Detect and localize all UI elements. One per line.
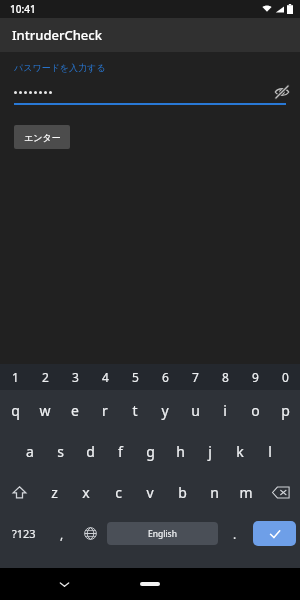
button[interactable]: 5 xyxy=(120,364,150,390)
staticText: z xyxy=(51,483,58,502)
button[interactable]: 2 xyxy=(30,364,60,390)
staticText: n xyxy=(210,483,219,502)
staticText: , xyxy=(60,526,64,542)
button[interactable]: エンター xyxy=(14,125,70,149)
staticText: e xyxy=(71,401,79,420)
button[interactable]: l xyxy=(255,431,285,472)
staticText: v xyxy=(146,483,154,502)
staticText: d xyxy=(86,442,95,461)
staticText: l xyxy=(268,442,272,461)
button[interactable]: Hide password xyxy=(0,81,300,103)
button[interactable]: d xyxy=(75,431,105,472)
staticText: 9 xyxy=(252,369,259,385)
button[interactable]: 9 xyxy=(240,364,270,390)
button[interactable]: w xyxy=(30,390,60,431)
button[interactable]: Home xyxy=(140,582,160,586)
staticText: b xyxy=(178,483,187,502)
button[interactable]: s xyxy=(45,431,75,472)
staticText: 8 xyxy=(222,369,229,385)
staticText: 7 xyxy=(192,369,199,385)
staticText: t xyxy=(132,401,138,420)
staticText: 1 xyxy=(12,369,19,385)
staticText: m xyxy=(239,483,253,502)
staticText: w xyxy=(39,401,51,420)
staticText: j xyxy=(208,442,212,461)
button[interactable]: , xyxy=(47,513,76,554)
button[interactable]: 4 xyxy=(90,364,120,390)
staticText: i xyxy=(223,401,227,420)
staticText: p xyxy=(281,401,290,420)
staticText: パスワードを入力する xyxy=(14,62,106,73)
staticText: エンター xyxy=(24,132,61,143)
staticText: x xyxy=(82,483,90,502)
staticText: c xyxy=(115,483,122,502)
button[interactable]: u xyxy=(180,390,210,431)
button[interactable]: t xyxy=(120,390,150,431)
button[interactable]: i xyxy=(210,390,240,431)
button[interactable]: 0 xyxy=(270,364,300,390)
button[interactable]: Backspace xyxy=(262,472,300,513)
button[interactable]: r xyxy=(90,390,120,431)
button[interactable]: f xyxy=(105,431,135,472)
button[interactable]: e xyxy=(60,390,90,431)
button[interactable]: p xyxy=(270,390,300,431)
button[interactable]: v xyxy=(134,472,166,513)
button[interactable]: . xyxy=(220,513,249,554)
staticText: s xyxy=(57,442,64,461)
staticText: ?123 xyxy=(12,526,36,541)
staticText: 0 xyxy=(282,369,289,385)
staticText: IntruderCheck xyxy=(12,26,102,44)
staticText: h xyxy=(176,442,185,461)
button[interactable]: 1 xyxy=(0,364,30,390)
button[interactable]: Hide password xyxy=(272,82,292,102)
button[interactable]: 7 xyxy=(180,364,210,390)
staticText: f xyxy=(118,442,123,461)
staticText: y xyxy=(161,401,169,420)
button[interactable]: Change keyboard language xyxy=(76,513,105,554)
button[interactable]: b xyxy=(166,472,198,513)
staticText: k xyxy=(236,442,244,461)
staticText: 5 xyxy=(132,369,139,385)
staticText: a xyxy=(26,442,34,461)
button[interactable]: m xyxy=(230,472,262,513)
button[interactable]: Shift xyxy=(0,472,38,513)
button[interactable]: a xyxy=(15,431,45,472)
staticText: 4 xyxy=(102,369,109,385)
button[interactable]: 8 xyxy=(210,364,240,390)
button[interactable]: 6 xyxy=(150,364,180,390)
staticText: English xyxy=(148,528,177,540)
staticText: r xyxy=(102,401,108,420)
button[interactable]: o xyxy=(240,390,270,431)
button[interactable]: x xyxy=(70,472,102,513)
staticText: u xyxy=(191,401,200,420)
button[interactable]: j xyxy=(195,431,225,472)
button[interactable]: c xyxy=(102,472,134,513)
button[interactable]: g xyxy=(135,431,165,472)
button[interactable]: q xyxy=(0,390,30,431)
staticText: o xyxy=(251,401,260,420)
button[interactable]: English xyxy=(107,522,218,545)
button[interactable]: ?123 xyxy=(0,513,47,554)
button[interactable]: h xyxy=(165,431,195,472)
button[interactable]: z xyxy=(38,472,70,513)
button[interactable]: Hide keyboard xyxy=(54,574,74,594)
button[interactable]: Enter xyxy=(253,521,296,546)
staticText: g xyxy=(146,442,155,461)
button[interactable]: n xyxy=(198,472,230,513)
button[interactable]: 3 xyxy=(60,364,90,390)
button[interactable]: y xyxy=(150,390,180,431)
staticText: 3 xyxy=(72,369,79,385)
staticText: q xyxy=(11,401,20,420)
button[interactable]: k xyxy=(225,431,255,472)
staticText: . xyxy=(233,526,237,542)
staticText: 2 xyxy=(42,369,49,385)
staticText: 10:41 xyxy=(10,2,36,16)
staticText: 6 xyxy=(162,369,169,385)
